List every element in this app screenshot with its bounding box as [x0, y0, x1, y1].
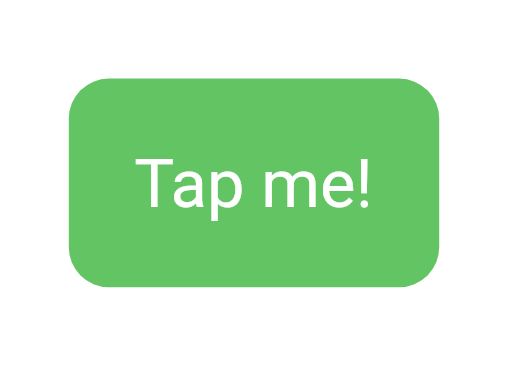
staticText: Tap me! [134, 145, 373, 224]
button[interactable]: Tap me! [69, 79, 439, 288]
